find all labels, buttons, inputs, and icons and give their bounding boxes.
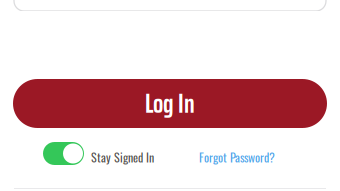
- staticText: Log In: [145, 82, 195, 124]
- staticText: Stay Signed In: [91, 148, 154, 166]
- button[interactable]: Stay Signed In: [43, 141, 154, 166]
- staticText: Forgot Password?: [199, 148, 275, 166]
- button[interactable]: Forgot Password?: [199, 141, 275, 166]
- button[interactable]: Log In: [13, 79, 327, 128]
